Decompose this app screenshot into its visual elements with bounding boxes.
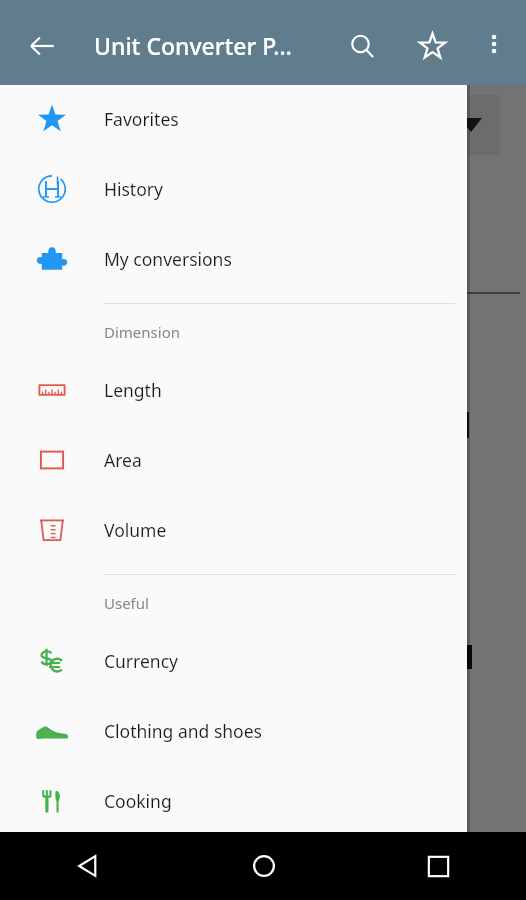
button[interactable]: Home	[176, 832, 351, 900]
button[interactable]: More options	[472, 22, 516, 66]
staticText: Length	[104, 378, 162, 402]
staticText: Clothing and shoes	[104, 719, 262, 743]
button[interactable]: Back	[0, 832, 176, 900]
staticText: My conversions	[104, 247, 232, 271]
button[interactable]: Length	[0, 365, 467, 415]
staticText: Favorites	[104, 107, 179, 131]
button[interactable]: My conversions	[0, 234, 467, 284]
button[interactable]: Search	[338, 22, 386, 70]
button[interactable]: Volume	[0, 505, 467, 555]
staticText: History	[104, 177, 163, 201]
button[interactable]: Unit Converter P…	[94, 20, 324, 70]
button[interactable]: Area	[0, 435, 467, 485]
button[interactable]	[300, 95, 500, 155]
button[interactable]: Currency	[0, 636, 467, 686]
button[interactable]: Favorites	[0, 94, 467, 144]
staticText: Unit Converter P…	[94, 30, 292, 61]
staticText: Cooking	[104, 789, 172, 813]
button[interactable]: Clothing and shoes	[0, 706, 467, 756]
staticText: Useful	[104, 593, 149, 613]
staticText: Area	[104, 448, 142, 472]
staticText: Dimension	[104, 322, 180, 342]
button[interactable]: Back	[18, 22, 66, 70]
staticText: Currency	[104, 649, 178, 673]
button[interactable]: Favorite	[408, 22, 456, 70]
staticText: Volume	[104, 518, 167, 542]
button[interactable]: Recent apps	[351, 832, 526, 900]
button[interactable]: History	[0, 164, 467, 214]
button[interactable]: Cooking	[0, 776, 467, 826]
